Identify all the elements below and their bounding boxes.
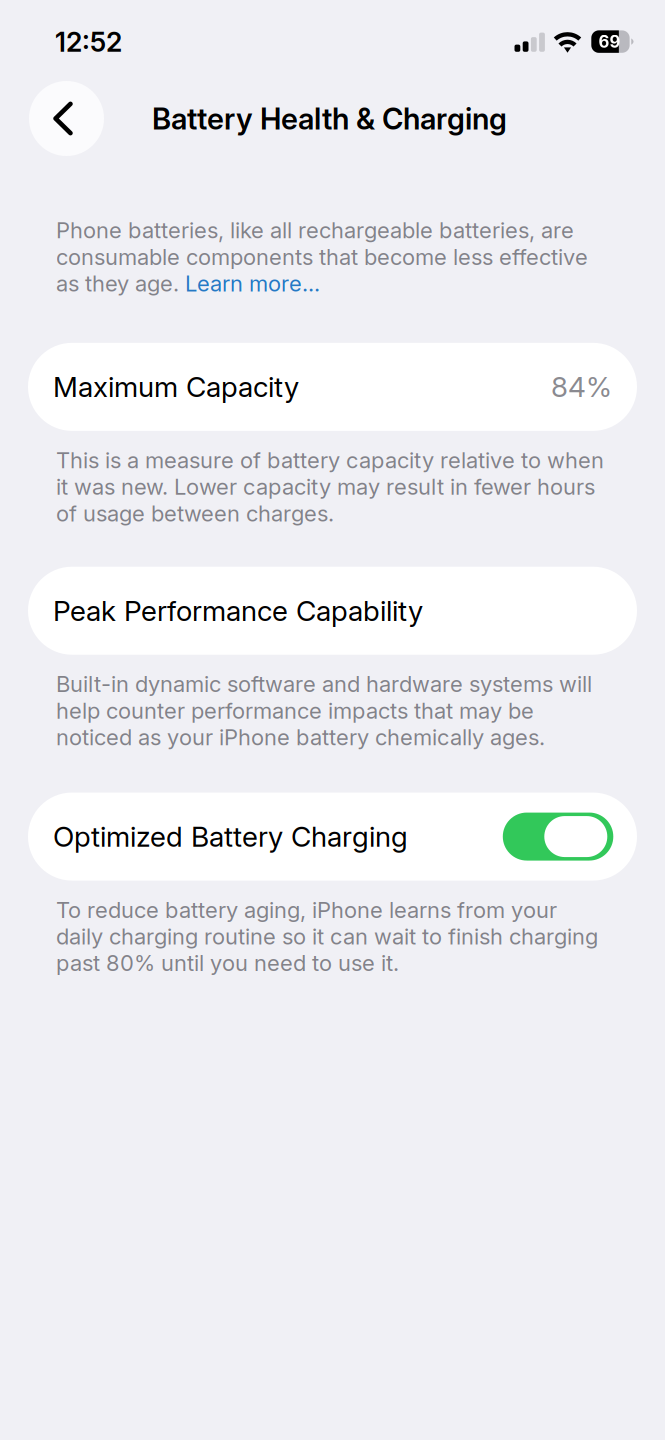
staticText: 84% bbox=[551, 370, 612, 404]
staticText: consumable components that become less e… bbox=[56, 244, 588, 270]
staticText: it was new. Lower capacity may result in… bbox=[56, 473, 595, 500]
button[interactable]: Back bbox=[29, 81, 104, 156]
staticText: as they age. bbox=[56, 270, 185, 297]
staticText: Peak Performance Capability bbox=[53, 594, 423, 628]
staticText: Built-in dynamic software and hardware s… bbox=[56, 671, 592, 697]
staticText: noticed as your iPhone battery chemicall… bbox=[56, 724, 545, 751]
staticText: of usage between charges. bbox=[56, 500, 334, 527]
button[interactable]: Peak Performance Capability bbox=[28, 567, 637, 655]
staticText: Learn more... bbox=[185, 270, 320, 297]
staticText: past 80% until you need to use it. bbox=[56, 950, 399, 976]
staticText: Phone batteries, like all rechargeable b… bbox=[56, 217, 574, 244]
staticText: Battery Health & Charging bbox=[152, 101, 507, 136]
button[interactable]: Learn more... bbox=[185, 270, 320, 297]
staticText: 12:52 bbox=[55, 26, 122, 58]
staticText: 69 bbox=[599, 31, 621, 52]
button[interactable]: Optimized Battery Charging bbox=[28, 793, 637, 881]
staticText: To reduce battery aging, iPhone learns f… bbox=[56, 897, 557, 923]
staticText: This is a measure of battery capacity re… bbox=[56, 447, 604, 473]
staticText: help counter performance impacts that ma… bbox=[56, 697, 534, 724]
staticText: daily charging routine so it can wait to… bbox=[56, 923, 598, 950]
staticText: Maximum Capacity bbox=[53, 370, 299, 404]
staticText: Optimized Battery Charging bbox=[53, 820, 408, 853]
